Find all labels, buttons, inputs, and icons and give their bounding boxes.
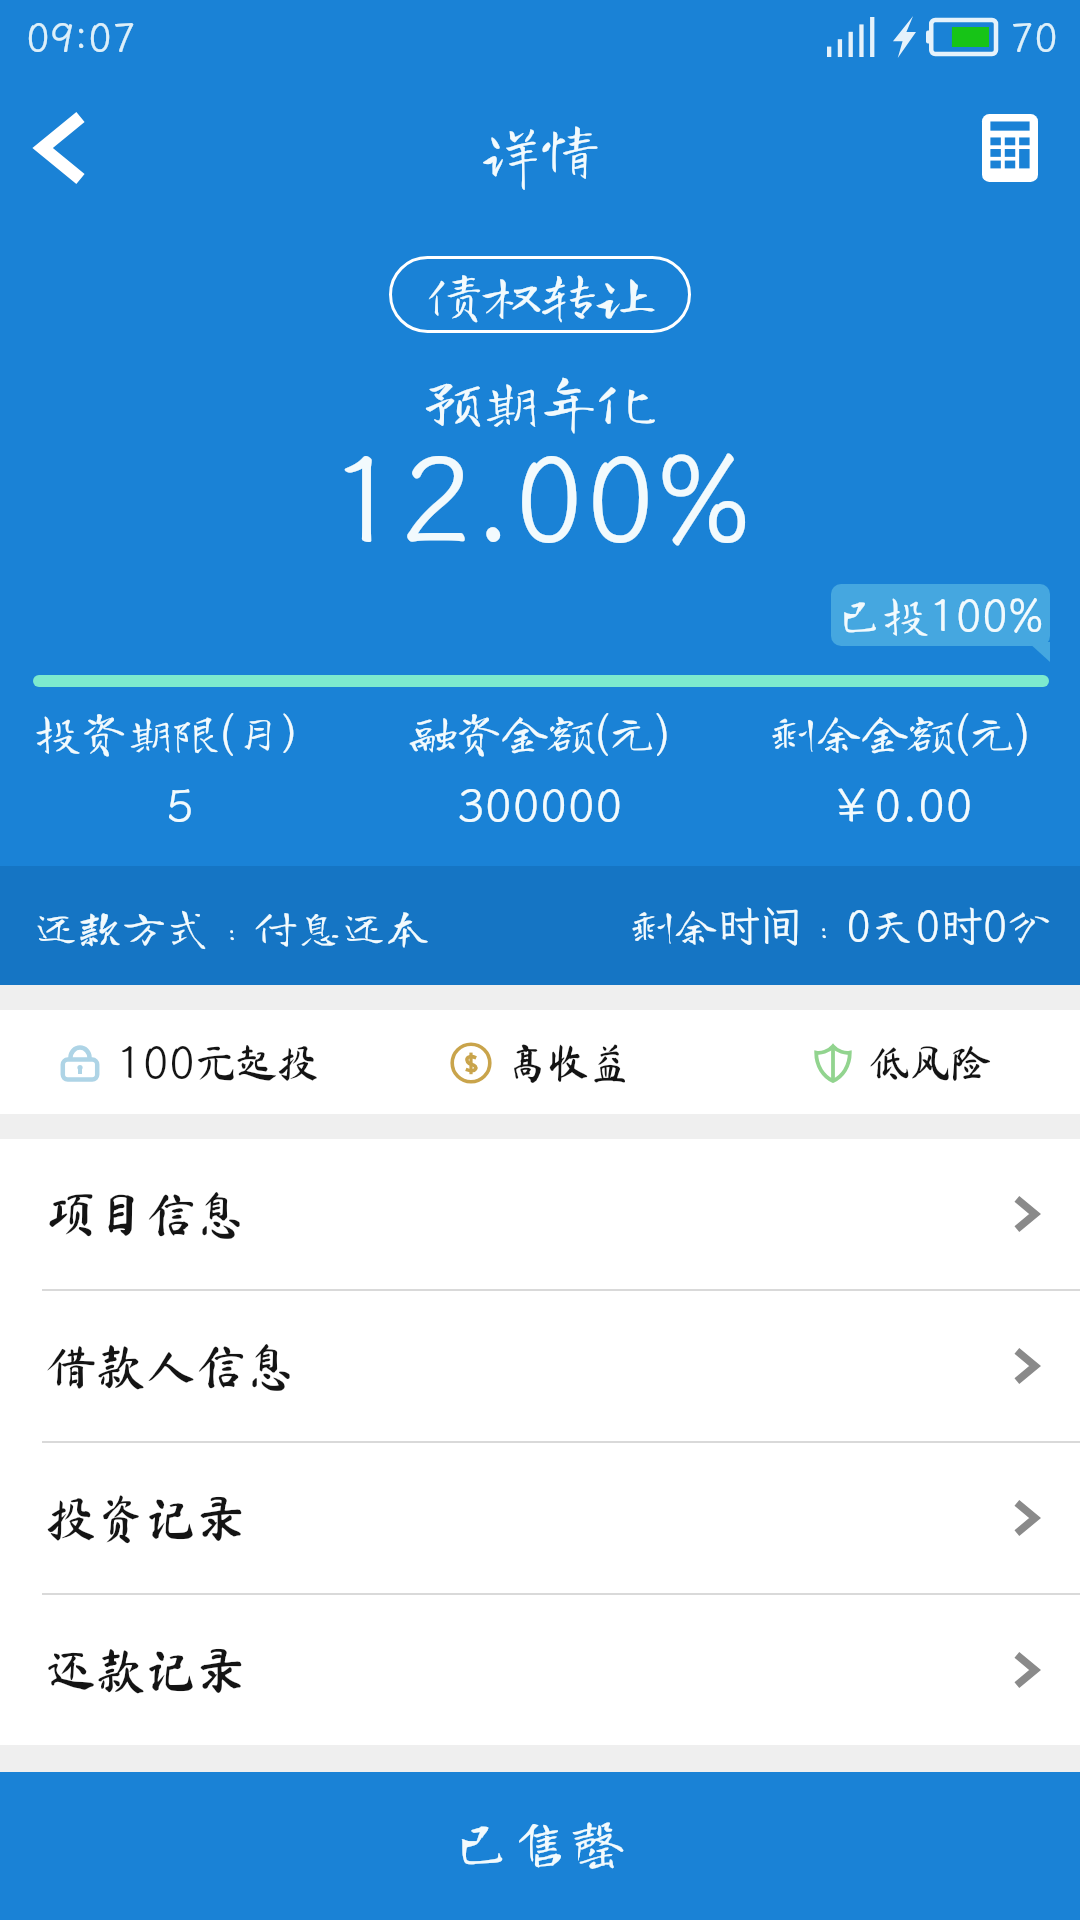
button[interactable]: 还款记录	[0, 1595, 1080, 1745]
staticText: 还款记录	[46, 1645, 246, 1695]
staticText: 100元起投	[116, 1033, 319, 1091]
button[interactable]: 债权转让	[389, 256, 691, 333]
staticText: 低风险	[869, 1042, 992, 1083]
staticText: 剩余金额(元)	[770, 704, 1031, 762]
staticText: 09:07	[26, 11, 136, 64]
staticText: 融资金额(元)	[410, 704, 671, 762]
staticText: 剩余时间：0天0时0分	[630, 898, 1052, 953]
staticText: 300000	[457, 774, 623, 835]
staticText: 详情	[480, 118, 600, 178]
button[interactable]: 高收益	[451, 1042, 630, 1083]
button[interactable]: Back	[14, 100, 110, 196]
staticText: 债权转让	[426, 266, 654, 323]
button[interactable]: 100元起投	[60, 1033, 319, 1091]
staticText: 项目信息	[46, 1189, 246, 1239]
staticText: 高收益	[507, 1042, 630, 1083]
staticText: 投资期限(月）	[35, 704, 325, 762]
staticText: 已投100%	[837, 586, 1044, 644]
button[interactable]: 已售罄	[0, 1772, 1080, 1920]
button[interactable]: 低风险	[813, 1042, 992, 1083]
staticText: 12.00%	[329, 418, 752, 575]
staticText: 5	[166, 774, 194, 835]
staticText: 预期年化	[424, 372, 657, 430]
staticText: 还款方式：付息还本	[34, 904, 430, 948]
button[interactable]: 投资记录	[0, 1443, 1080, 1593]
staticText: 借款人信息	[46, 1341, 296, 1391]
button[interactable]: 项目信息	[0, 1139, 1080, 1289]
staticText: 70	[1010, 11, 1058, 64]
button[interactable]: Calculator	[962, 100, 1058, 196]
staticText: 投资记录	[46, 1493, 246, 1543]
button[interactable]: 借款人信息	[0, 1291, 1080, 1441]
staticText: 已售罄	[453, 1812, 628, 1870]
staticText: ￥0.00	[828, 774, 973, 835]
